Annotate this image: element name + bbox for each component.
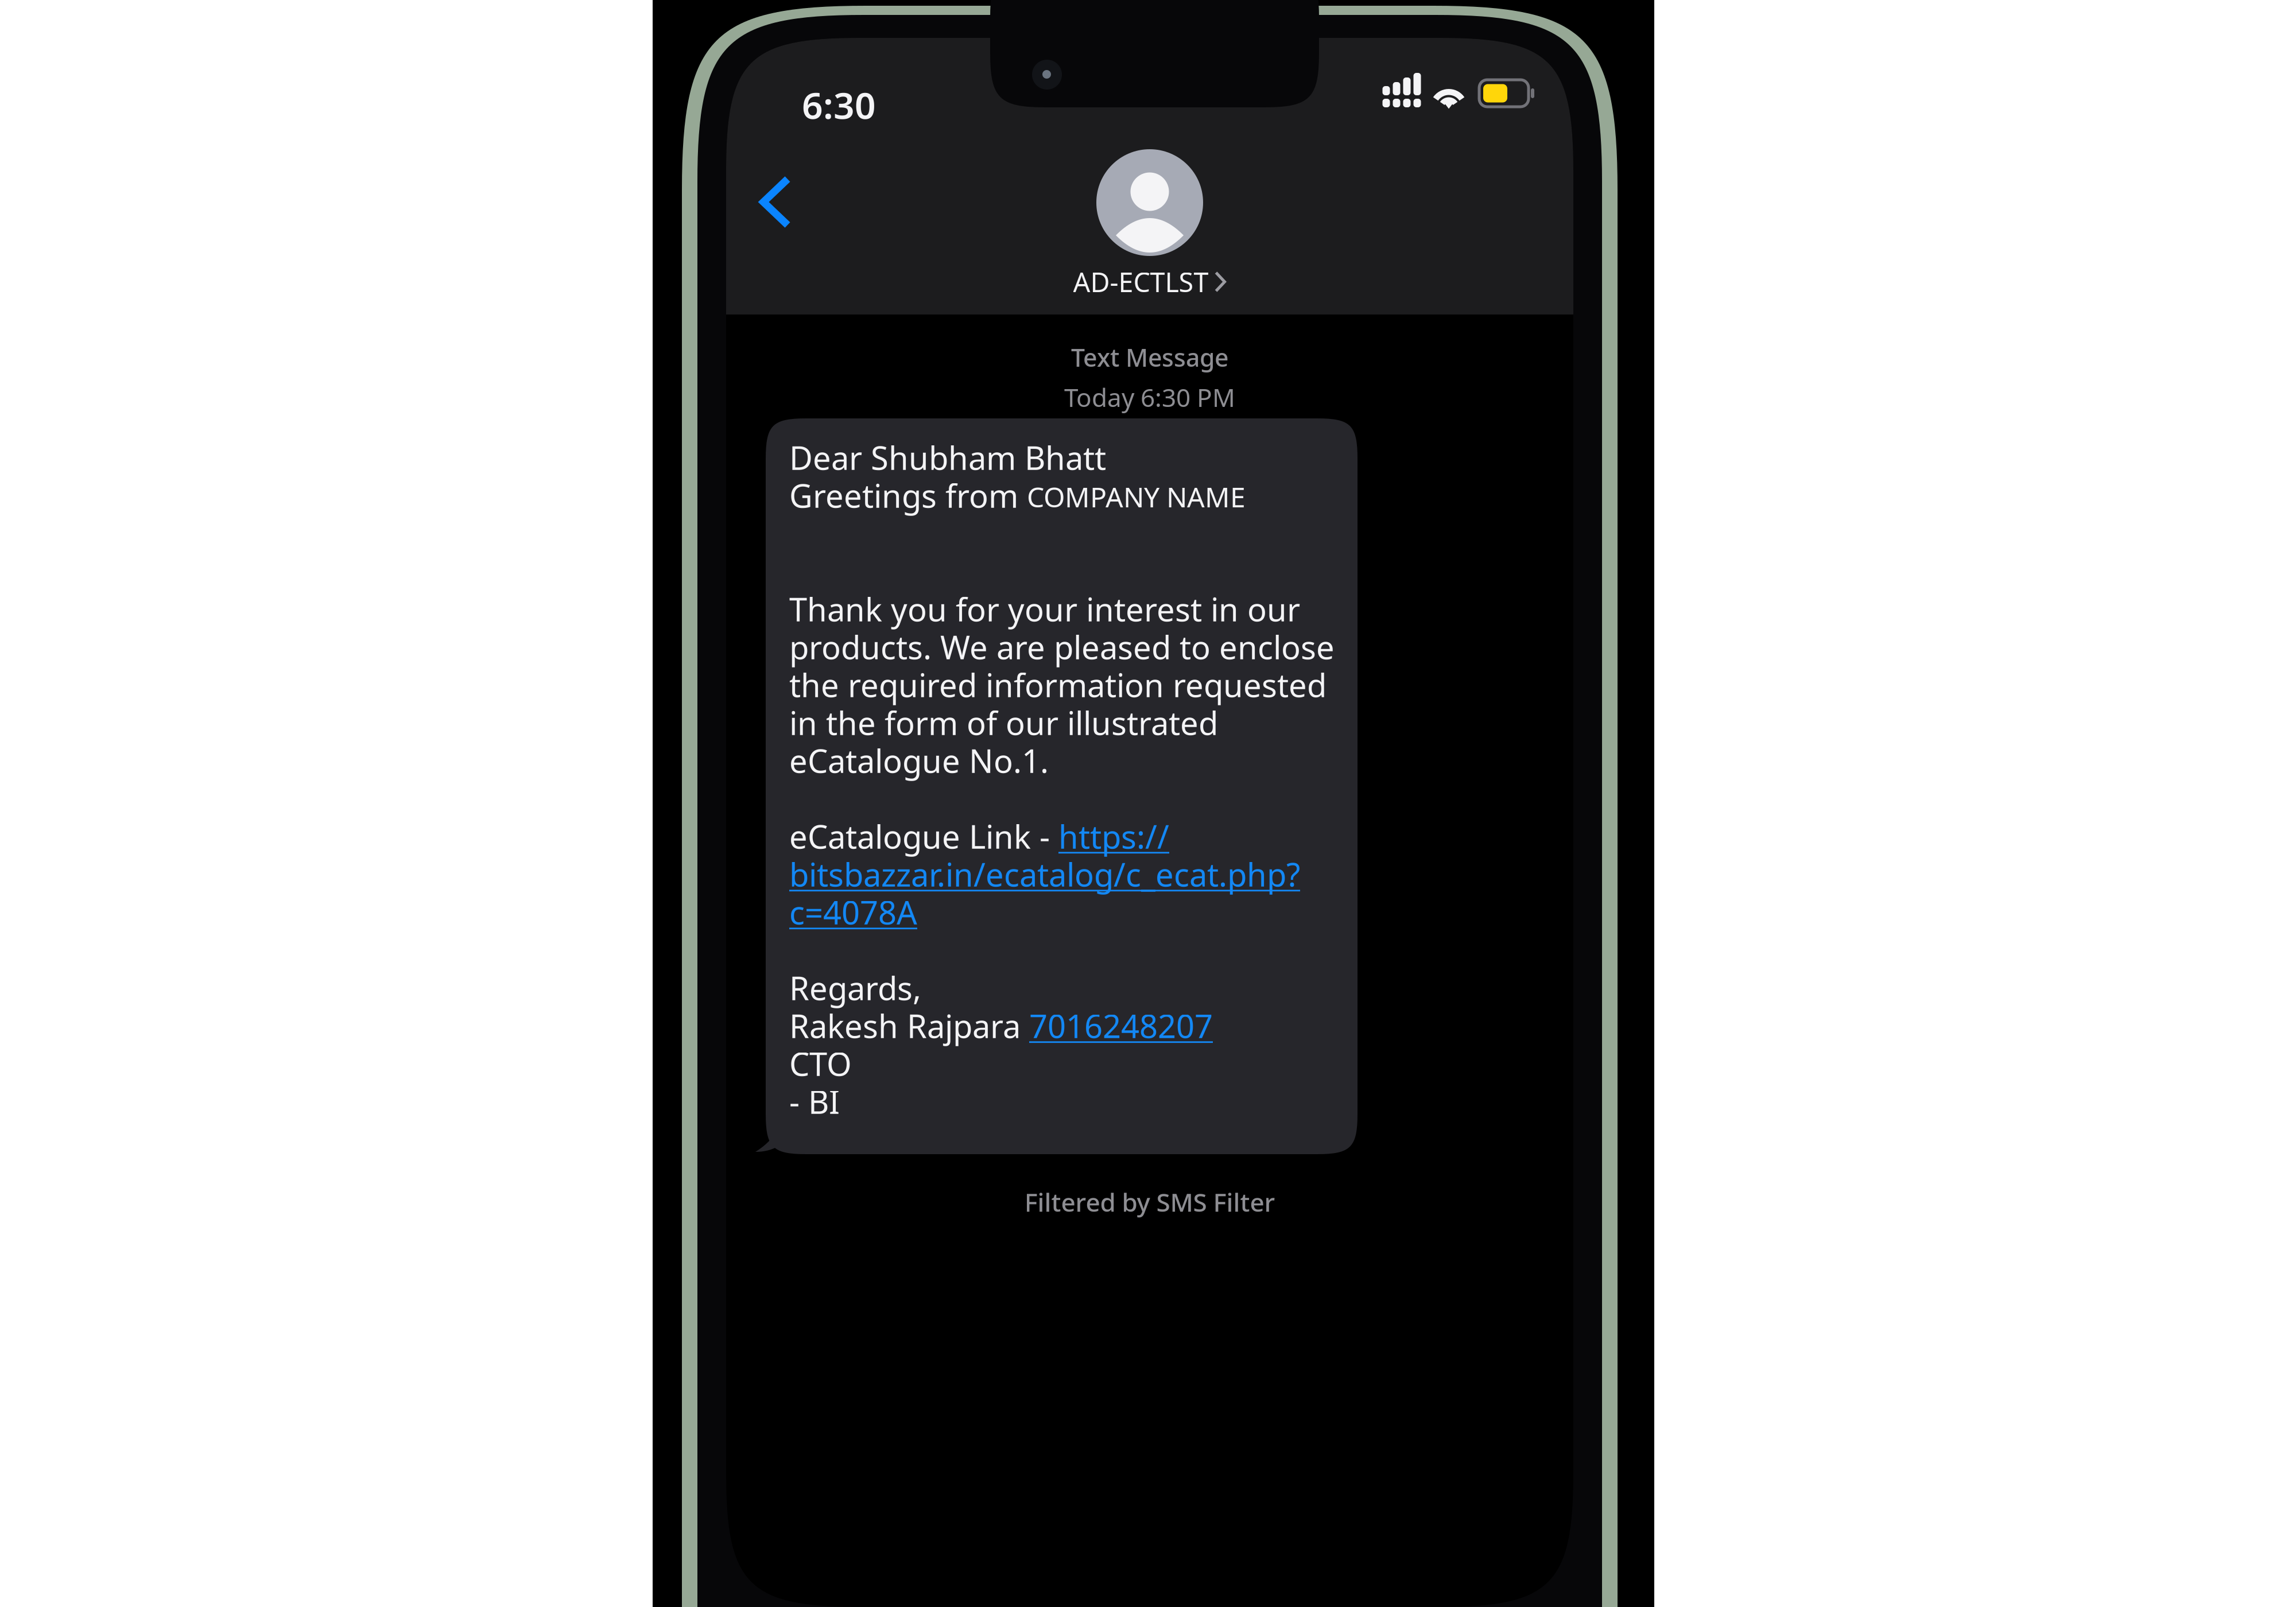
staticText: Greetings from bbox=[789, 474, 1027, 517]
staticText: AD-ECTLST bbox=[1073, 264, 1209, 300]
staticText: Filtered by SMS Filter bbox=[1024, 1185, 1275, 1219]
staticText: 7016248207 bbox=[1029, 1004, 1213, 1047]
staticText: Regards, bbox=[789, 966, 921, 1009]
staticText: c=4078A bbox=[789, 891, 917, 933]
staticText: products. We are pleased to enclose bbox=[789, 625, 1335, 668]
staticText: bitsbazzar.in/ecatalog/c_ecat.php? bbox=[789, 853, 1300, 895]
staticText: Thank you for your interest in our bbox=[789, 588, 1300, 630]
staticText: CTO bbox=[789, 1042, 852, 1085]
staticText: eCatalogue No.1. bbox=[789, 739, 1049, 782]
staticText: COMPANY NAME bbox=[1027, 478, 1246, 515]
button[interactable]: Back bbox=[730, 162, 821, 242]
staticText: the required information requested bbox=[789, 663, 1327, 706]
staticText: eCatalogue Link - bbox=[789, 815, 1058, 858]
staticText: Dear Shubham Bhatt bbox=[789, 436, 1106, 479]
button[interactable]: AD-ECTLST bbox=[726, 149, 1573, 300]
staticText: - BI bbox=[789, 1080, 840, 1123]
staticText: Today 6:30 PM bbox=[1064, 380, 1235, 414]
staticText: Rakesh Rajpara bbox=[789, 1004, 1029, 1047]
staticText: https:// bbox=[1058, 815, 1169, 858]
staticText: Text Message bbox=[1071, 341, 1228, 373]
staticText: 6:30 bbox=[802, 80, 876, 129]
staticText: in the form of our illustrated bbox=[789, 701, 1218, 744]
